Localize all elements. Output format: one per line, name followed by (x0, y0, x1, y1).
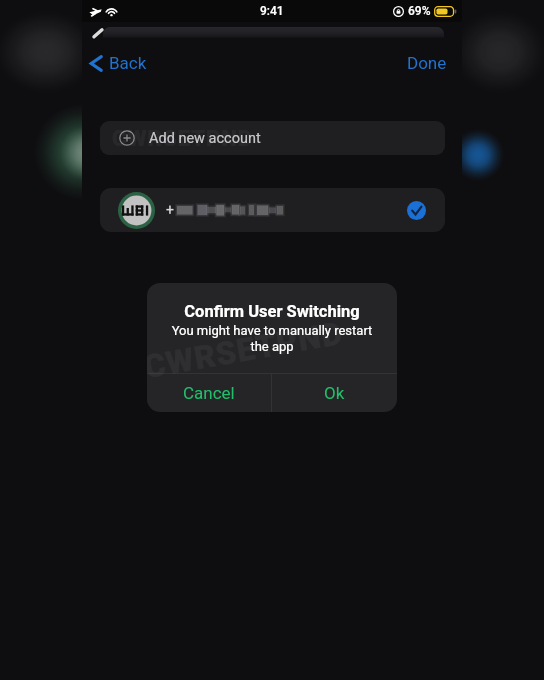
staticText: 69% (408, 4, 431, 18)
staticText: Add new account (149, 130, 261, 147)
other: Rotation lock (393, 6, 404, 17)
button[interactable]: Done (395, 47, 462, 79)
other: Battery 69 percent (434, 6, 457, 17)
other: Wi-Fi (105, 5, 118, 18)
staticText: CWRSETPND (112, 126, 254, 152)
button[interactable]: Cancel (147, 374, 271, 412)
other: Airplane mode (89, 5, 102, 18)
button[interactable]: Ok (272, 374, 397, 412)
button[interactable]: Back (82, 47, 157, 79)
staticText: Ok (324, 383, 345, 403)
staticText: CWRSETPND (147, 314, 347, 386)
button[interactable]: + (100, 188, 445, 232)
staticText: 9:41 (260, 4, 284, 18)
staticText: Confirm User Switching (147, 302, 397, 321)
button[interactable]: Add new account (100, 121, 445, 155)
staticText: + (166, 202, 174, 218)
other: Selected account (407, 201, 426, 220)
staticText: Back (109, 53, 147, 73)
staticText: Cancel (183, 383, 235, 403)
staticText: You might have to manually restart the a… (147, 323, 397, 354)
staticText: Done (407, 53, 447, 73)
